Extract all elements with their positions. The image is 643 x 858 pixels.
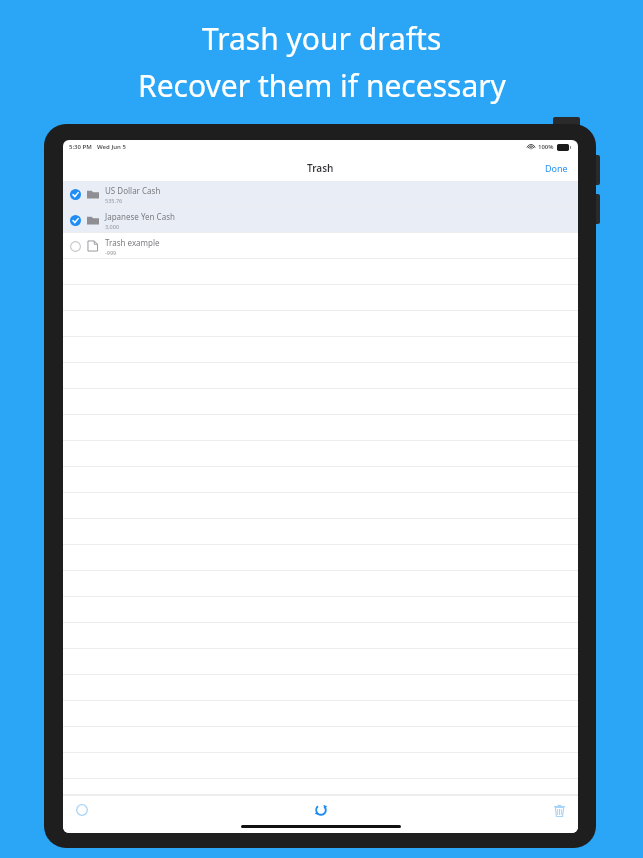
button[interactable]: Select all: [71, 799, 93, 821]
staticText: 5:30 PM: [69, 143, 92, 151]
staticText: 3,000: [105, 223, 120, 230]
button[interactable]: Restore: [310, 799, 332, 821]
staticText: -999: [105, 249, 117, 256]
button[interactable]: Delete: [548, 799, 570, 821]
staticText: Trash: [307, 161, 334, 175]
button[interactable]: US Dollar Cash: [63, 181, 578, 207]
staticText: US Dollar Cash: [105, 185, 161, 196]
staticText: Trash your drafts: [202, 18, 442, 59]
staticText: 100%: [538, 143, 554, 151]
staticText: Recover them if necessary: [138, 65, 506, 106]
button[interactable]: Trash example: [63, 233, 578, 259]
staticText: Trash example: [105, 237, 160, 248]
staticText: Wed Jun 5: [97, 143, 126, 151]
button[interactable]: Done: [535, 158, 578, 178]
staticText: 535.76: [105, 197, 123, 204]
staticText: Done: [545, 162, 568, 174]
staticText: Japanese Yen Cash: [105, 211, 175, 222]
button[interactable]: Japanese Yen Cash: [63, 207, 578, 233]
